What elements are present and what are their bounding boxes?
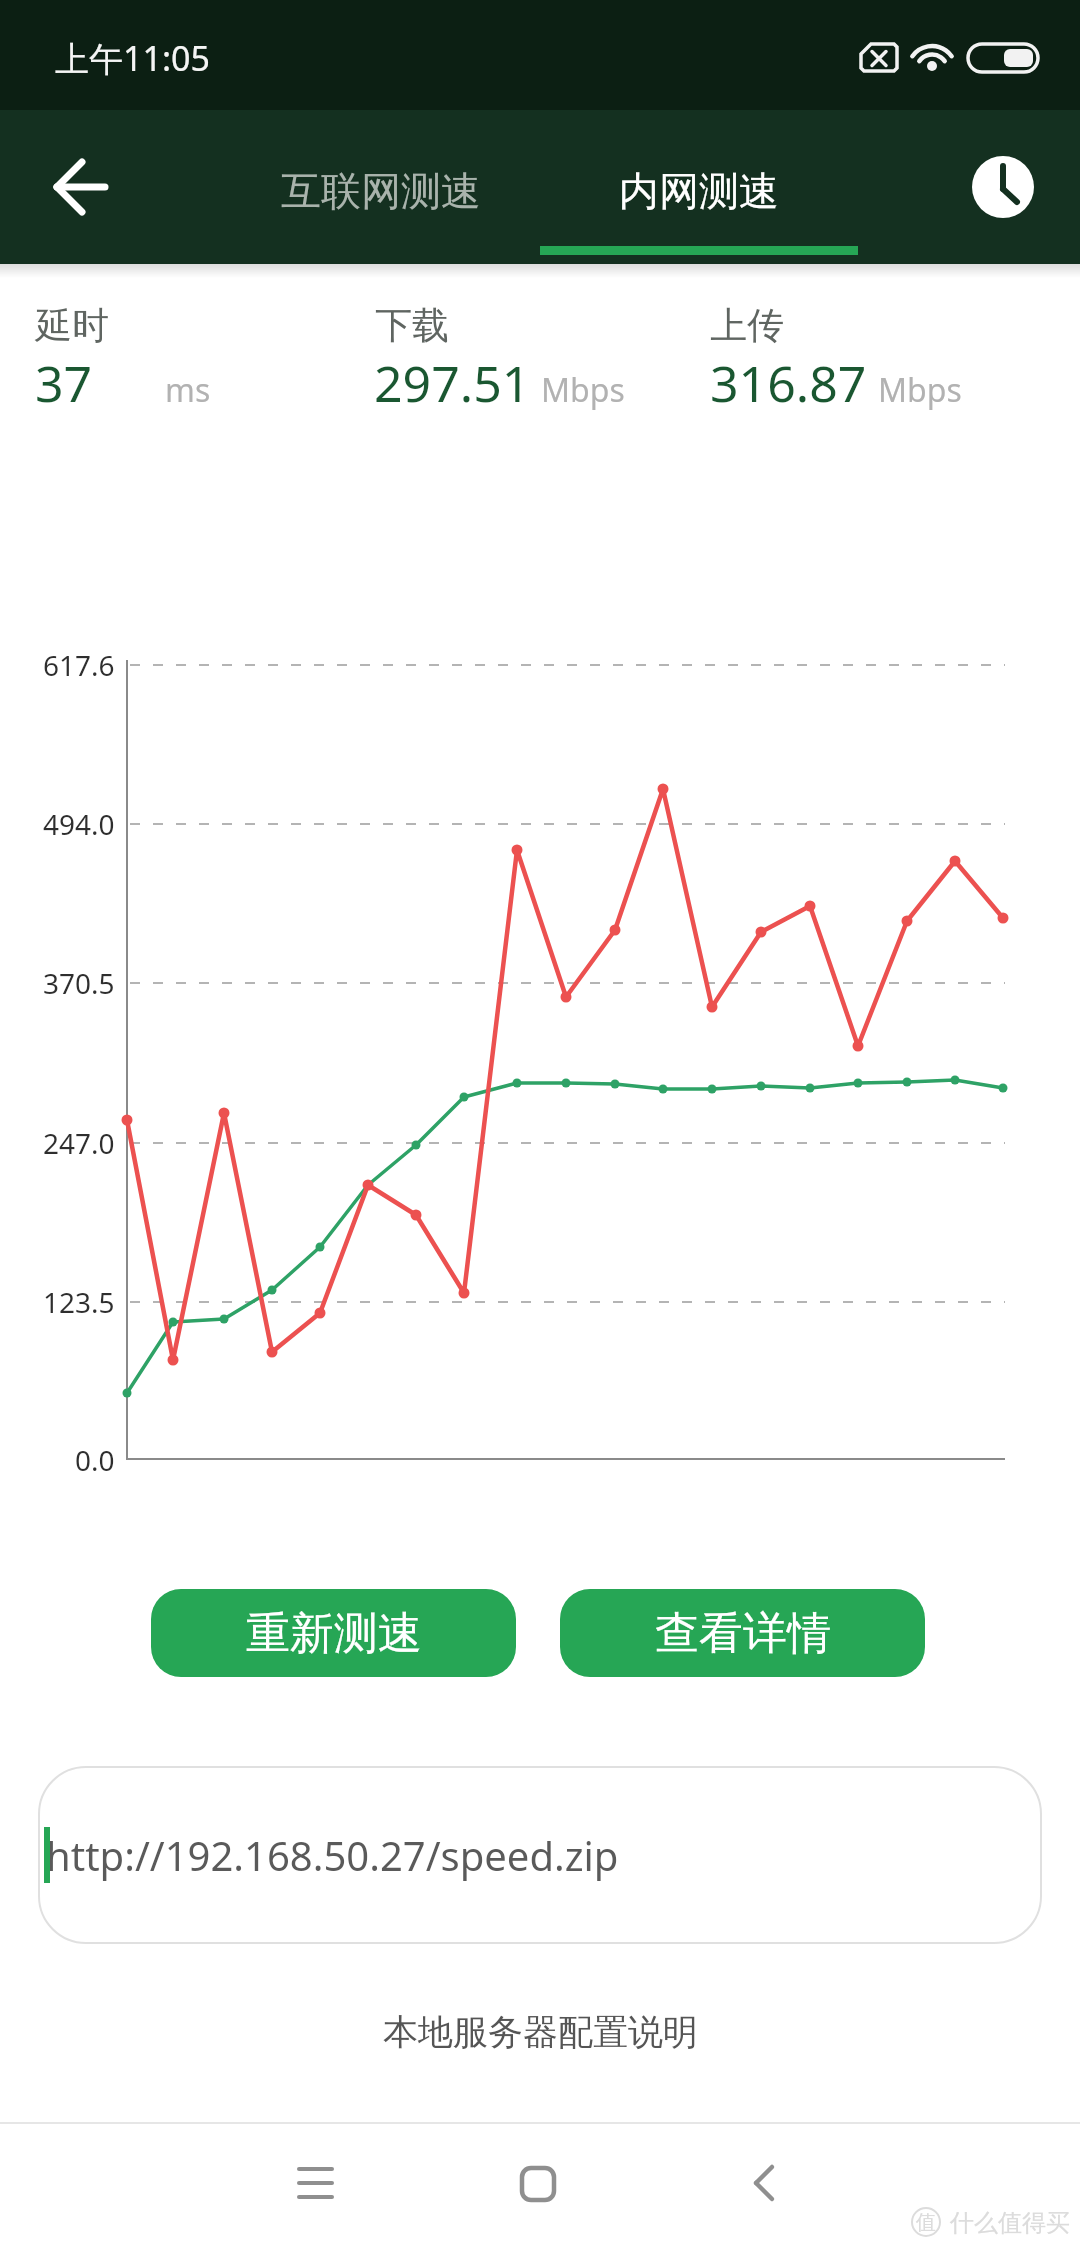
staticText: 下载 (375, 302, 449, 349)
button[interactable] (674, 2130, 854, 2240)
button[interactable]: http://192.168.50.27/speed.zip (38, 1766, 1042, 1944)
staticText: 494.0 (43, 805, 115, 843)
staticText: 0.0 (75, 1441, 115, 1479)
button[interactable] (972, 156, 1034, 218)
staticText: 247.0 (43, 1124, 115, 1162)
staticText: 370.5 (43, 964, 115, 1002)
staticText: 上传 (710, 302, 784, 349)
staticText: 123.5 (43, 1283, 115, 1321)
staticText: Mbps (878, 368, 962, 412)
staticText: 什么值得买 (950, 2208, 1070, 2238)
staticText: 内网测速 (619, 166, 779, 216)
staticText: ms (165, 368, 211, 412)
staticText: 297.51 (374, 349, 531, 417)
staticText: http://192.168.50.27/speed.zip (46, 1828, 619, 1882)
staticText: 重新测速 (246, 1606, 422, 1661)
staticText: 互联网测速 (281, 166, 481, 216)
staticText: 617.6 (43, 646, 115, 684)
staticText: 上午11:05 (55, 35, 210, 81)
staticText: 37 (35, 349, 93, 417)
button[interactable]: 查看详情 (560, 1589, 925, 1677)
button[interactable]: 本地服务器配置说明 (0, 2008, 1080, 2056)
staticText: 本地服务器配置说明 (383, 2010, 698, 2054)
button[interactable] (450, 2130, 630, 2240)
button[interactable]: 重新测速 (151, 1589, 516, 1677)
staticText: 316.87 (710, 349, 867, 417)
button[interactable]: 互联网测速 (222, 135, 540, 247)
staticText: Mbps (541, 368, 625, 412)
button[interactable] (30, 137, 130, 237)
staticText: 延时 (35, 302, 109, 349)
staticText: 查看详情 (655, 1606, 831, 1661)
button[interactable]: 内网测速 (540, 135, 858, 247)
staticText: 值 (916, 2210, 936, 2235)
button[interactable] (226, 2130, 406, 2240)
